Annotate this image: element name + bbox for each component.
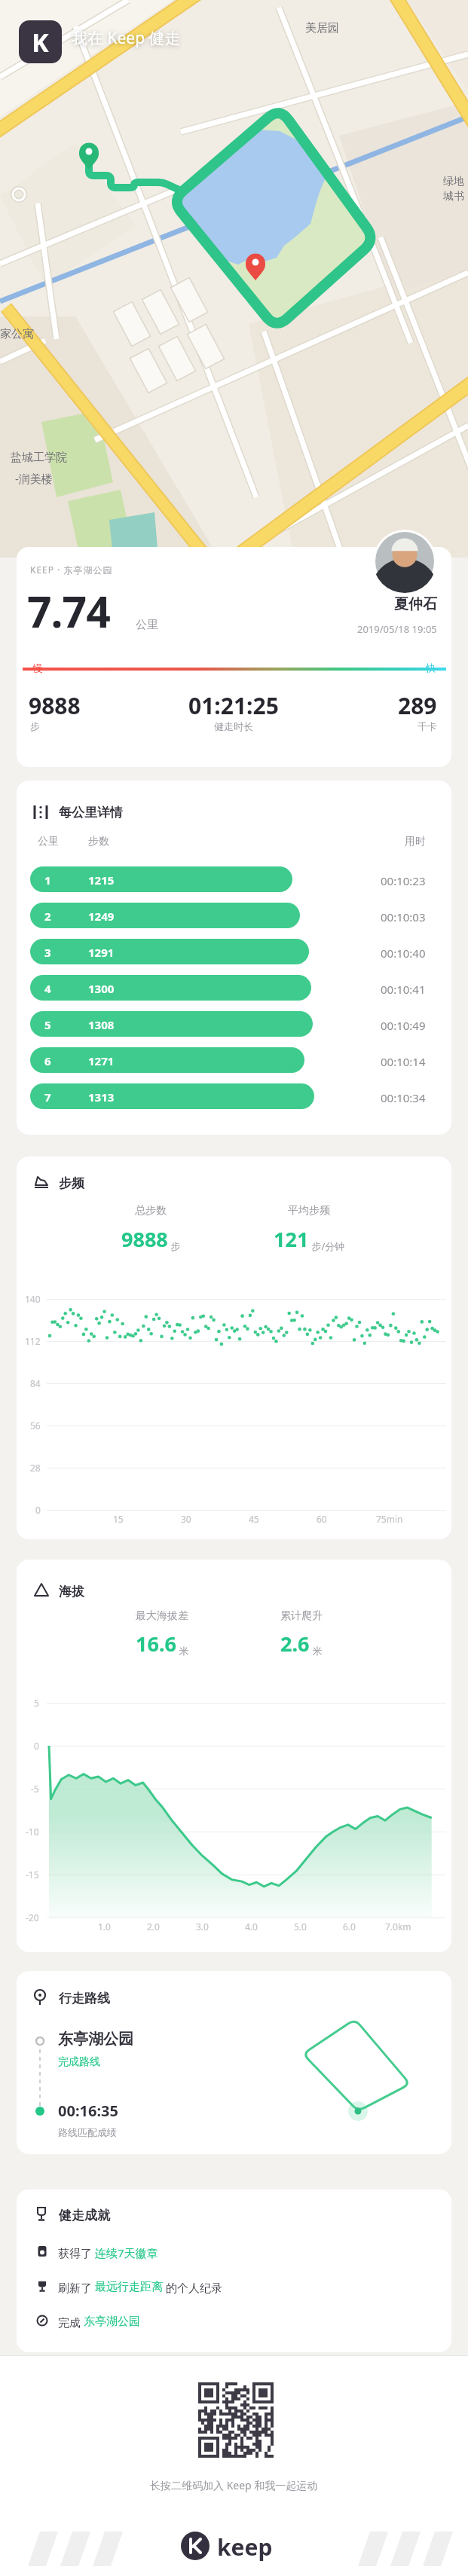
staticText: 公里 [136,618,158,632]
staticText: 121 [274,1225,309,1253]
staticText: 1.0 [98,1921,111,1933]
staticText: 00:10:14 [381,1054,426,1069]
staticText: 3.0 [196,1921,209,1933]
staticText: 9888 [121,1225,168,1253]
staticText: 45 [249,1513,259,1525]
staticText: 75min [376,1513,403,1525]
staticText: 112 [25,1335,41,1347]
staticText: 绿地 [443,175,464,188]
staticText: 56 [30,1419,41,1432]
button[interactable]: 刷新了 [58,2280,222,2295]
staticText: KEEP · 东亭湖公园 [30,564,113,576]
staticText: 步/分钟 [309,1239,345,1253]
staticText: 1 [44,872,51,888]
staticText: 7.74 [27,582,110,640]
staticText: 每公里详情 [59,805,123,820]
staticText: 获得了 [58,2245,95,2260]
staticText: -20 [26,1911,39,1924]
button[interactable]: K [19,20,62,63]
staticText: 3 [44,945,51,960]
staticText: 1271 [88,1053,115,1068]
button[interactable] [17,1157,451,1539]
staticText: 4 [44,981,51,996]
staticText: -15 [26,1869,39,1881]
staticText: 公里 [38,835,59,848]
button[interactable]: 完成 [58,2315,140,2330]
staticText: 289 [398,690,437,721]
button[interactable] [30,975,311,1001]
staticText: 1313 [88,1089,115,1105]
staticText: 东亭湖公园 [58,2030,133,2049]
staticText: 步数 [88,835,109,848]
staticText: 7.0km [385,1921,411,1933]
staticText: 总步数 [135,1204,167,1218]
button[interactable] [30,866,292,892]
staticText: 1308 [88,1017,115,1032]
staticText: 16.6 [136,1630,176,1658]
staticText: 米 [176,1644,189,1658]
staticText: 完成路线 [58,2055,100,2069]
staticText: 步 [30,720,40,732]
staticText: 30 [181,1513,191,1525]
staticText: 东亭湖公园 [84,2315,140,2329]
staticText: 60 [317,1513,327,1525]
staticText: 5.0 [294,1921,307,1933]
staticText: 用时 [405,835,426,848]
staticText: 1291 [88,945,115,960]
button[interactable] [17,1971,451,2154]
staticText: 00:10:49 [381,1018,426,1033]
button[interactable]: 获得了 [58,2245,158,2260]
staticText: 6.0 [343,1921,356,1933]
button[interactable] [198,2382,274,2458]
staticText: 行走路线 [59,1991,110,2006]
staticText: 平均步频 [288,1204,330,1218]
staticText: 5 [44,1017,51,1032]
button[interactable] [17,781,451,1135]
staticText: 2019/05/18 19:05 [357,622,437,636]
staticText: 最大海拔差 [136,1609,188,1623]
staticText: 00:16:35 [58,2101,118,2121]
staticText: 4.0 [245,1921,258,1933]
staticText: 1249 [88,909,115,924]
staticText: 我在 Keep 健走 [72,27,181,49]
staticText: 00:10:40 [381,946,426,961]
staticText: keep [217,2532,273,2562]
staticText: 完成 [58,2315,84,2330]
staticText: 7 [44,1089,51,1105]
staticText: 01:21:25 [188,690,279,721]
staticText: 5 [34,1697,39,1709]
staticText: 城书 [443,190,464,203]
staticText: 快 [426,662,436,674]
button[interactable] [17,547,451,767]
button[interactable] [30,939,309,964]
staticText: -润美楼 [15,471,53,486]
button[interactable] [17,2189,451,2352]
staticText: 15 [113,1513,124,1525]
button[interactable] [30,1011,313,1037]
staticText: 米 [310,1644,323,1658]
staticText: 家公寓 [0,327,34,341]
staticText: 的个人纪录 [163,2280,222,2295]
staticText: 长按二维码加入 Keep 和我一起运动 [150,2478,318,2492]
staticText: 140 [25,1293,41,1305]
staticText: 00:10:23 [381,873,426,888]
button[interactable] [30,903,300,928]
staticText: 累计爬升 [280,1609,323,1623]
staticText: 步频 [59,1175,84,1191]
staticText: 84 [30,1377,41,1389]
staticText: 2 [44,909,51,924]
button[interactable] [17,1560,451,1952]
staticText: 健走成就 [59,2208,110,2223]
staticText: 路线匹配成绩 [58,2126,117,2138]
staticText: 最远行走距离 [95,2280,163,2294]
staticText: 6 [44,1053,51,1068]
staticText: K [32,25,49,60]
staticText: 盐城工学院 [11,451,67,465]
button[interactable]: keep [181,2530,286,2562]
staticText: 2.0 [147,1921,160,1933]
staticText: 健走时长 [214,720,253,732]
button[interactable] [30,1083,314,1109]
staticText: 00:10:03 [381,909,426,924]
staticText: 连续7天徽章 [95,2245,158,2260]
button[interactable] [30,1047,304,1073]
